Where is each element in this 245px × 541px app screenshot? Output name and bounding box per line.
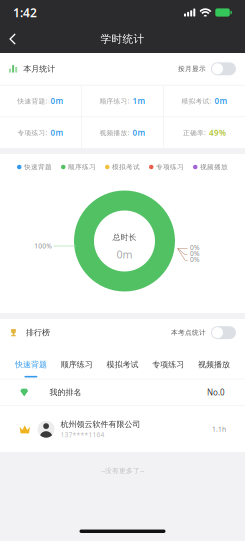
button[interactable]: 专项练习 [145,347,191,379]
staticText: 本月统计 [23,64,55,74]
staticText: 1m [132,96,145,106]
staticText: 总时长 [112,232,136,242]
staticText: 0m [51,96,64,106]
staticText: 0% [190,255,200,264]
staticText: 专项练习: [18,128,48,137]
staticText: 学时统计 [100,32,144,45]
staticText: 我的排名 [49,387,81,397]
staticText: 顺序练习: [99,97,129,105]
staticText: 模拟考试 [112,163,140,171]
staticText: 模拟考试 [106,360,138,369]
button[interactable]: Current exam point statistics [211,326,236,339]
button[interactable]: 快速背题 [8,347,54,379]
staticText: 快速背题 [15,360,47,369]
staticText: 专项练习 [156,163,184,171]
staticText: 视频播放 [200,163,228,171]
button[interactable]: Back [0,25,26,53]
staticText: 0% [190,243,200,252]
staticText: 1.1h [212,425,226,434]
button[interactable]: Show by month [211,62,236,75]
staticText: 49% [209,127,226,138]
button[interactable]: 模拟考试 [100,347,145,379]
button[interactable]: 视频播放 [191,347,237,379]
staticText: 0% [190,249,200,258]
staticText: 本考点统计 [171,329,206,337]
staticText: 模拟考试: [181,97,211,105]
staticText: 0m [51,127,64,138]
staticText: 100% [34,242,52,250]
staticText: 杭州领云软件有限公司 [61,419,141,429]
button[interactable]: 杭州领云软件有限公司 [0,406,245,452]
staticText: 视频播放: [99,128,129,137]
staticText: 0m [116,247,132,261]
staticText: 137****1164 [61,430,105,439]
staticText: 正确率: [183,128,206,137]
staticText: 按月显示 [178,65,206,73]
staticText: 1:42 [13,4,37,20]
staticText: No.0 [207,387,225,398]
staticText: 顺序练习 [68,163,96,171]
staticText: 快速背题 [24,163,52,171]
staticText: 0m [132,127,145,138]
button[interactable]: 顺序练习 [54,347,100,379]
staticText: 顺序练习 [61,360,93,369]
staticText: 快速背题: [18,97,48,105]
staticText: 专项练习 [152,360,184,369]
staticText: 视频播放 [198,360,230,369]
staticText: 排行榜 [26,328,50,337]
staticText: 0m [214,96,227,106]
staticText: --没有更多了-- [101,466,144,475]
